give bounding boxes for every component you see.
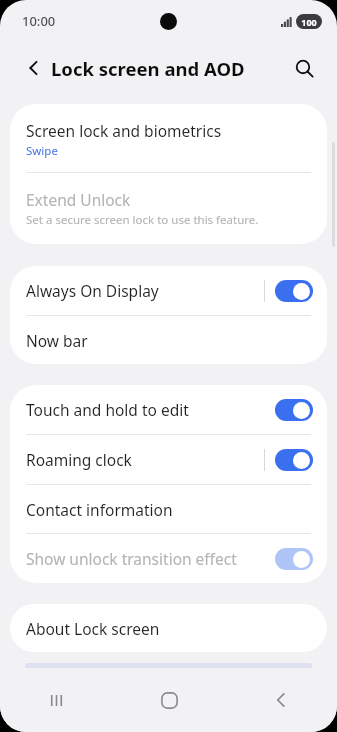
button[interactable]: Screen lock and biometrics: [10, 104, 327, 172]
staticText: About Lock screen: [26, 618, 160, 639]
button[interactable]: Toggle: [275, 548, 313, 570]
staticText: Touch and hold to edit: [26, 399, 275, 420]
button[interactable]: Always On Display: [10, 266, 327, 315]
staticText: Set a secure screen lock to use this fea…: [26, 212, 259, 228]
button[interactable]: Contact information: [10, 485, 327, 533]
staticText: 10:00: [22, 12, 56, 30]
button[interactable]: Extend Unlock: [10, 173, 327, 244]
button[interactable]: Toggle: [275, 399, 313, 421]
staticText: Roaming clock: [26, 449, 264, 470]
button[interactable]: Home: [113, 668, 225, 732]
button[interactable]: Now bar: [10, 316, 327, 364]
button[interactable]: Back: [18, 52, 50, 84]
button[interactable]: Toggle: [275, 280, 313, 302]
staticText: Screen lock and biometrics: [26, 120, 222, 141]
button[interactable]: About Lock screen: [10, 604, 327, 652]
button[interactable]: Roaming clock: [10, 435, 327, 484]
staticText: Now bar: [26, 330, 88, 351]
staticText: Lock screen and AOD: [51, 56, 245, 81]
button[interactable]: Show unlock transition effect: [10, 534, 327, 583]
button[interactable]: Recent apps: [0, 668, 113, 732]
staticText: Contact information: [26, 499, 173, 520]
staticText: Show unlock transition effect: [26, 548, 275, 569]
staticText: Extend Unlock: [26, 189, 131, 210]
button[interactable]: Touch and hold to edit: [10, 385, 327, 434]
button[interactable]: Back: [225, 668, 337, 732]
button[interactable]: Search: [287, 51, 321, 85]
staticText: 100: [301, 16, 317, 28]
staticText: Always On Display: [26, 280, 264, 301]
button[interactable]: Toggle: [275, 449, 313, 471]
staticText: Swipe: [26, 143, 58, 159]
